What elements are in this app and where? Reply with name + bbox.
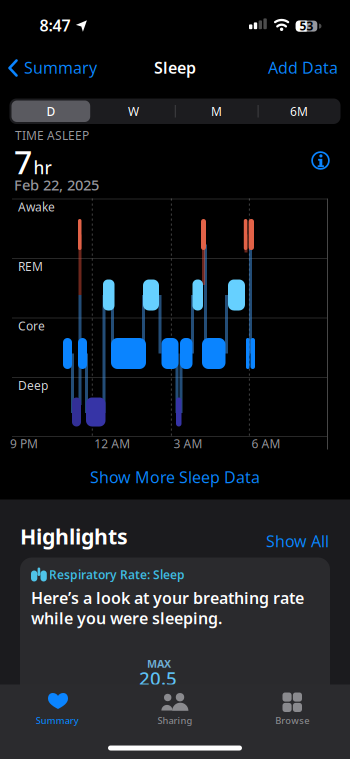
- button[interactable]: [0, 0, 350, 180]
- staticText: W: [128, 103, 139, 119]
- staticText: Sharing: [157, 714, 192, 727]
- button[interactable]: D: [11, 100, 90, 122]
- staticText: Feb 22, 2025: [14, 175, 99, 194]
- button[interactable]: Add Data: [238, 57, 338, 78]
- button[interactable]: W: [94, 100, 173, 122]
- staticText: Sleep: [154, 57, 196, 78]
- staticText: Respiratory Rate: Sleep: [49, 567, 185, 583]
- staticText: Deep: [18, 377, 48, 393]
- staticText: REM: [18, 258, 43, 274]
- button[interactable]: M: [177, 100, 256, 122]
- staticText: 7: [14, 141, 32, 183]
- staticText: Core: [18, 318, 45, 334]
- staticText: Show More Sleep Data: [90, 466, 260, 487]
- staticText: Browse: [275, 714, 309, 727]
- staticText: MAX: [147, 656, 171, 671]
- staticText: Here’s a look at your breathing rate: [31, 587, 304, 608]
- staticText: 9 PM: [10, 436, 38, 452]
- button[interactable]: Sharing: [120, 688, 230, 738]
- button[interactable]: Show More Sleep Data: [0, 466, 350, 487]
- staticText: Add Data: [268, 57, 338, 78]
- staticText: 20.5: [139, 666, 177, 690]
- staticText: 6 AM: [251, 436, 280, 452]
- button[interactable]: 6M: [260, 100, 339, 122]
- staticText: Summary: [24, 57, 97, 78]
- staticText: 53: [299, 18, 313, 34]
- staticText: TIME ASLEEP: [15, 127, 89, 143]
- staticText: 3 AM: [173, 436, 202, 452]
- staticText: hr: [33, 156, 51, 179]
- staticText: 12 AM: [94, 436, 130, 452]
- button[interactable]: Summary: [0, 0, 110, 86]
- staticText: Show All: [266, 530, 329, 552]
- staticText: M: [211, 103, 222, 119]
- staticText: while you were sleeping.: [31, 607, 222, 629]
- staticText: 6M: [290, 103, 308, 119]
- staticText: Summary: [36, 714, 79, 727]
- button[interactable]: Summary: [2, 688, 112, 738]
- staticText: Awake: [18, 199, 55, 215]
- staticText: Highlights: [20, 522, 128, 550]
- staticText: D: [46, 103, 55, 119]
- button[interactable]: Respiratory Rate: Sleep: [0, 0, 350, 759]
- button[interactable]: Show All: [229, 530, 329, 552]
- staticText: 8:47: [39, 15, 70, 36]
- button[interactable]: Browse: [238, 688, 348, 738]
